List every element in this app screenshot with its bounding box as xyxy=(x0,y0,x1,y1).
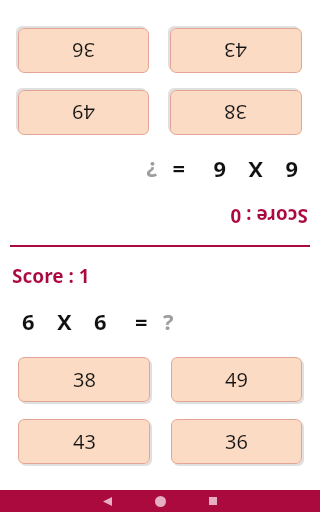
staticText: 36 xyxy=(225,428,248,455)
button[interactable]: Home xyxy=(140,490,180,512)
staticText: Score : 0 xyxy=(230,203,308,229)
button[interactable]: 43 xyxy=(18,419,150,464)
staticText: ? xyxy=(163,306,174,336)
staticText: 6 xyxy=(213,156,226,186)
staticText: = xyxy=(135,306,148,336)
button[interactable]: Back xyxy=(87,490,127,512)
button[interactable]: 43 xyxy=(170,28,302,73)
button[interactable]: Recent apps xyxy=(193,490,233,512)
staticText: X xyxy=(57,306,72,336)
staticText: 6 xyxy=(94,306,107,336)
staticText: 49 xyxy=(72,99,95,126)
staticText: 43 xyxy=(224,37,247,64)
button[interactable]: 36 xyxy=(171,419,302,464)
staticText: Score : 1 xyxy=(12,263,90,289)
staticText: 36 xyxy=(72,37,95,64)
staticText: X xyxy=(248,156,263,186)
button[interactable]: 36 xyxy=(18,28,149,73)
staticText: = xyxy=(172,156,185,186)
staticText: 6 xyxy=(285,156,298,186)
staticText: 49 xyxy=(225,366,248,393)
button[interactable]: 38 xyxy=(170,90,302,135)
button[interactable]: 49 xyxy=(171,357,302,402)
staticText: 38 xyxy=(224,99,247,126)
staticText: 6 xyxy=(22,306,35,336)
button[interactable]: 49 xyxy=(18,90,149,135)
staticText: 43 xyxy=(73,428,96,455)
staticText: 38 xyxy=(73,366,96,393)
button[interactable]: 38 xyxy=(18,357,150,402)
staticText: ? xyxy=(146,156,157,186)
